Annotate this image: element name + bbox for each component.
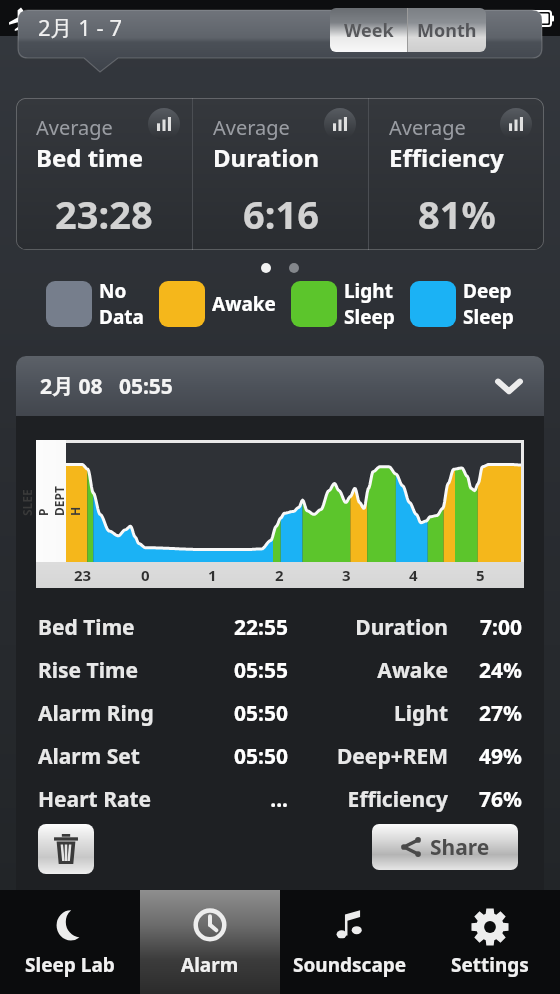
staticText: 3 (342, 565, 351, 585)
staticText: Bed Time (38, 613, 178, 642)
staticText: Duration (298, 613, 448, 642)
button[interactable]: No (46, 278, 144, 330)
button[interactable]: Light (291, 278, 395, 330)
staticText: Sleep (344, 304, 395, 330)
staticText: ... (178, 785, 288, 814)
staticText: SLEEP DEPTH (19, 486, 83, 516)
staticText: Sleep Lab (25, 952, 115, 978)
staticText: Average (389, 114, 466, 141)
staticText: 7:00 (460, 613, 522, 642)
staticText: 05:50 (178, 699, 288, 728)
button[interactable]: Month (408, 8, 486, 52)
other: Collapse (496, 373, 522, 399)
staticText: Settings (451, 952, 529, 978)
button[interactable]: Settings (420, 890, 560, 994)
staticText: Rise Time (38, 656, 178, 685)
staticText: Efficiency (298, 785, 448, 814)
staticText: Bed time (36, 141, 144, 174)
staticText: 2月 08 05:55 (40, 372, 173, 401)
staticText: 0 (141, 565, 150, 585)
button[interactable]: Chart (148, 108, 180, 140)
staticText: 100% (478, 7, 520, 29)
staticText: 5 (476, 565, 485, 585)
staticText: 23 (74, 565, 92, 585)
staticText: Awake (298, 656, 448, 685)
staticText: Soundscape (293, 952, 407, 978)
staticText: No (99, 278, 127, 304)
staticText: 2 (275, 565, 284, 585)
button[interactable]: Alarm (140, 890, 280, 994)
staticText: Heart Rate (38, 785, 178, 814)
button[interactable]: Week (330, 8, 407, 52)
staticText: Duration (213, 141, 319, 174)
button[interactable]: Average (369, 98, 544, 250)
staticText: 1 (208, 565, 217, 585)
staticText: 49% (460, 742, 522, 771)
staticText: Deep (463, 278, 512, 304)
staticText: Alarm Set (38, 742, 178, 771)
staticText: 6:16 (243, 188, 319, 240)
button[interactable]: Delete (38, 824, 94, 874)
staticText: 2月 1 - 7 (38, 12, 122, 42)
staticText: 24% (460, 656, 522, 685)
staticText: 27% (460, 699, 522, 728)
staticText: Light (344, 278, 393, 304)
staticText: Light (298, 699, 448, 728)
staticText: 5:55 (271, 7, 305, 30)
staticText: Week (344, 18, 394, 43)
button[interactable]: Chart (324, 108, 356, 140)
staticText: Efficiency (389, 141, 504, 174)
staticText: 76% (460, 785, 522, 814)
staticText: Alarm Ring (38, 699, 178, 728)
staticText: Data (99, 304, 144, 330)
button[interactable]: 2月 08 05:55 (16, 356, 544, 416)
staticText: 05:55 (178, 656, 288, 685)
button[interactable]: Average (193, 98, 368, 250)
button[interactable]: Share (372, 824, 518, 870)
staticText: Month (417, 18, 477, 43)
staticText: Awake (212, 291, 276, 317)
button[interactable]: Chart (500, 108, 532, 140)
staticText: Average (213, 114, 290, 141)
staticText: Alarm (181, 952, 239, 978)
staticText: Average (36, 114, 113, 141)
button[interactable]: Soundscape (280, 890, 420, 994)
button[interactable]: Average (16, 98, 192, 250)
staticText: Deep+REM (298, 742, 448, 771)
staticText: 81% (418, 188, 496, 240)
button[interactable]: Deep (410, 278, 514, 330)
staticText: Sleep (463, 304, 514, 330)
button[interactable]: Sleep Lab (0, 890, 140, 994)
staticText: 23:28 (55, 188, 153, 240)
staticText: 05:50 (178, 742, 288, 771)
staticText: 22:55 (178, 613, 288, 642)
staticText: 4 (409, 565, 418, 585)
button[interactable]: Awake (159, 281, 276, 327)
staticText: Share (430, 833, 490, 862)
